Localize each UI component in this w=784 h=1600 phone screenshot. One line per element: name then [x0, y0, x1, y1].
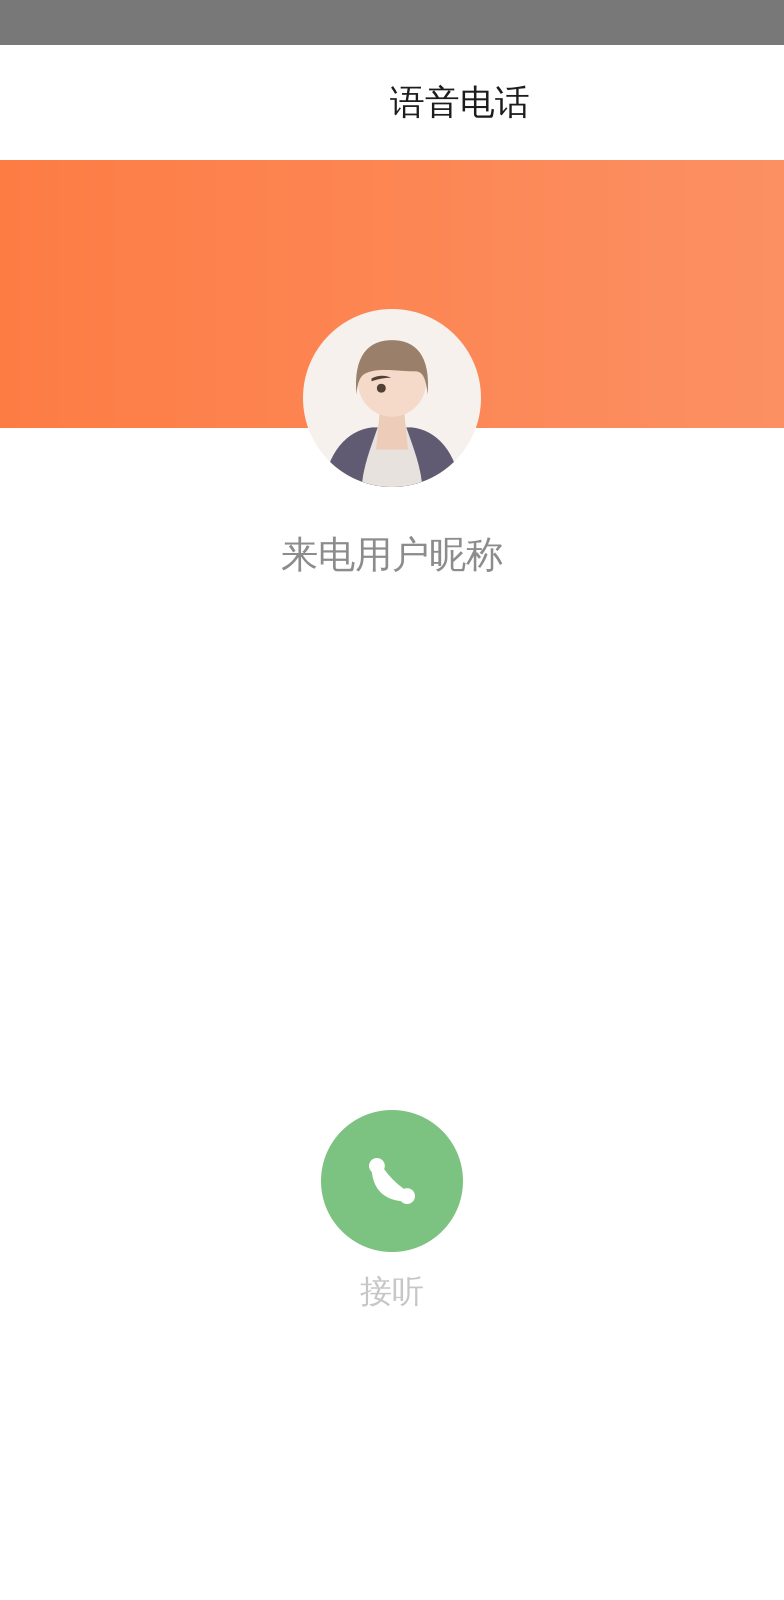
button[interactable]: 接听 [321, 1110, 463, 1252]
staticText: 来电用户昵称 [281, 532, 503, 578]
staticText: 接听 [360, 1272, 424, 1311]
staticText: 语音电话 [390, 81, 530, 124]
